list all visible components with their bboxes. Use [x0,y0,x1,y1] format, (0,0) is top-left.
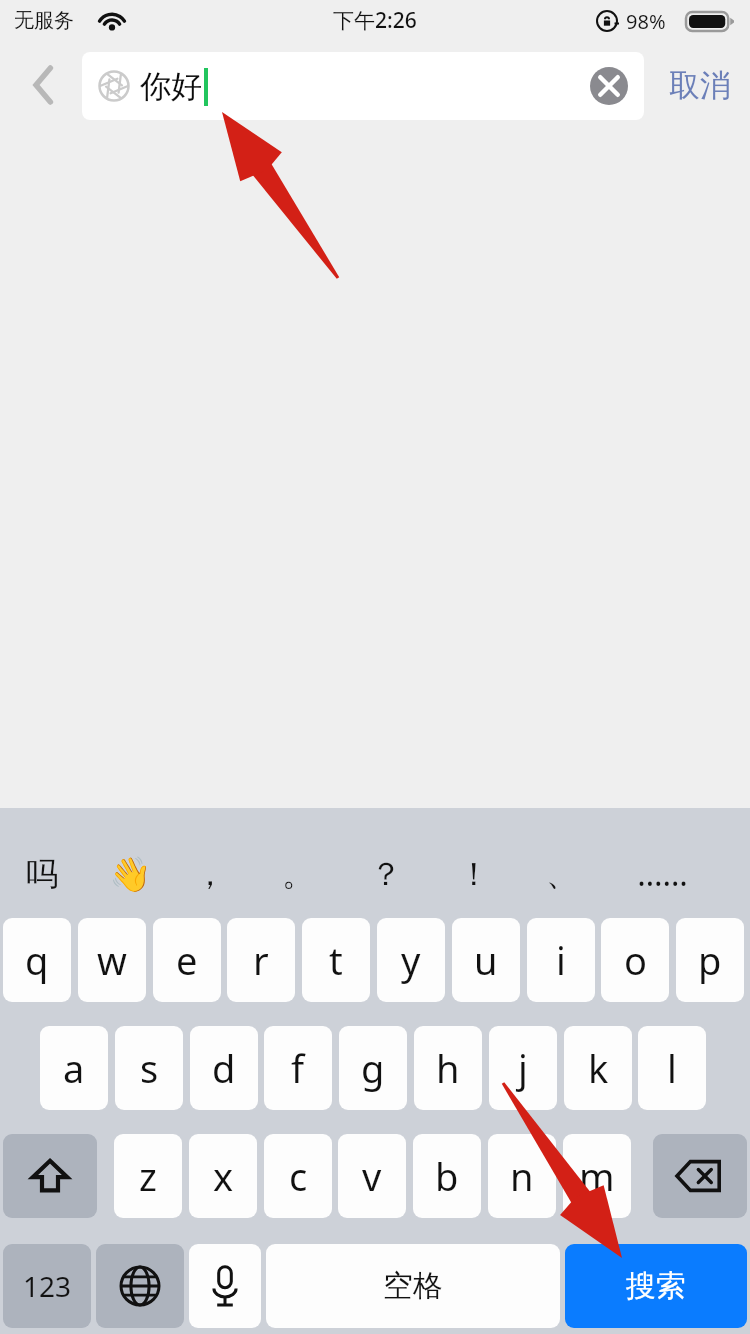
staticText: f [291,1042,305,1094]
button[interactable]: u [452,918,520,1002]
button[interactable]: q [3,918,71,1002]
staticText: 98% [626,8,666,35]
staticText: 。 [282,854,314,894]
button[interactable]: 、 [520,846,604,902]
button[interactable]: …… [620,846,704,902]
staticText: e [176,934,198,986]
button[interactable]: b [413,1134,481,1218]
button[interactable]: f [264,1026,332,1110]
button[interactable]: ？ [344,846,428,902]
staticText: 取消 [669,66,731,105]
staticText: d [212,1042,236,1094]
staticText: 👋 [109,854,152,894]
button[interactable]: v [338,1134,406,1218]
button[interactable]: ！ [432,846,516,902]
staticText: y [401,934,421,986]
staticText: x [213,1150,234,1202]
staticText: i [556,934,566,986]
button[interactable]: 搜索 [565,1244,747,1328]
staticText: v [362,1150,382,1202]
staticText: 搜索 [626,1267,686,1305]
staticText: n [510,1150,534,1202]
staticText: g [361,1042,385,1094]
button[interactable]: n [488,1134,556,1218]
staticText: k [588,1042,609,1094]
staticText: 123 [23,1267,72,1305]
button[interactable]: i [527,918,595,1002]
button[interactable]: o [601,918,669,1002]
button[interactable]: d [190,1026,258,1110]
staticText: c [289,1150,308,1202]
button[interactable]: y [377,918,445,1002]
staticText: o [624,934,647,986]
button[interactable]: g [339,1026,407,1110]
staticText: 下午2:26 [333,6,417,35]
button[interactable]: k [564,1026,632,1110]
staticText: ？ [370,854,402,894]
button[interactable]: Switch keyboard language [96,1244,184,1328]
staticText: a [63,1042,85,1094]
button[interactable]: z [114,1134,182,1218]
staticText: 吗 [26,854,58,894]
button[interactable]: 。 [256,846,340,902]
staticText: s [140,1042,159,1094]
button[interactable]: Backspace [653,1134,747,1218]
staticText: 无服务 [14,8,74,33]
staticText: q [25,934,49,986]
staticText: 你好 [140,67,202,106]
staticText: z [139,1150,157,1202]
button[interactable]: r [227,918,295,1002]
button[interactable]: 123 [3,1244,91,1328]
staticText: ， [194,854,226,894]
button[interactable]: ， [168,846,252,902]
button[interactable]: Back [18,44,70,126]
button[interactable]: e [153,918,221,1002]
staticText: u [474,934,498,986]
staticText: t [329,934,343,986]
staticText: 空格 [383,1267,443,1305]
button[interactable]: t [302,918,370,1002]
staticText: m [579,1150,615,1202]
button[interactable]: 空格 [266,1244,560,1328]
button[interactable]: Clear text [586,63,632,109]
button[interactable]: 取消 [652,44,748,126]
button[interactable]: h [414,1026,482,1110]
button[interactable]: Shift [3,1134,97,1218]
staticText: …… [637,852,688,896]
button[interactable]: s [115,1026,183,1110]
staticText: ！ [458,854,490,894]
button[interactable]: p [676,918,744,1002]
button[interactable]: w [78,918,146,1002]
staticText: j [518,1042,528,1094]
button[interactable]: j [489,1026,557,1110]
staticText: p [698,934,722,986]
staticText: r [253,934,269,986]
button[interactable]: 👋 [88,846,172,902]
staticText: 、 [546,854,578,894]
staticText: l [667,1042,677,1094]
button[interactable]: Voice input [189,1244,261,1328]
staticText: b [435,1150,459,1202]
button[interactable]: 你好 [82,52,644,120]
button[interactable]: 吗 [0,846,84,902]
staticText: w [97,934,127,986]
button[interactable]: a [40,1026,108,1110]
staticText: h [436,1042,460,1094]
button[interactable]: x [189,1134,257,1218]
button[interactable]: m [563,1134,631,1218]
button[interactable]: c [264,1134,332,1218]
button[interactable]: l [638,1026,706,1110]
